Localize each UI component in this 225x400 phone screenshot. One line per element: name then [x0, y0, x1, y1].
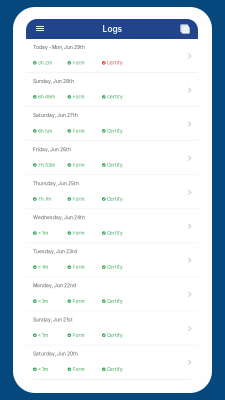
staticText: < 1m	[38, 332, 48, 338]
staticText: 7h 33m	[38, 162, 55, 168]
staticText: Form	[72, 94, 84, 100]
staticText: 6h 5m	[38, 128, 52, 134]
staticText: < 1m	[38, 264, 48, 270]
staticText: Certify	[107, 196, 123, 202]
staticText: Certify	[107, 332, 123, 338]
staticText: Tuesday, Jun 23rd	[33, 248, 77, 254]
staticText: < 1m	[38, 298, 48, 304]
staticText: Form	[72, 366, 84, 372]
staticText: Saturday, Jun 20th	[33, 351, 78, 357]
button[interactable]: New log	[176, 19, 194, 39]
staticText: Form	[72, 332, 84, 338]
button[interactable]: Saturday, Jun 20th	[26, 345, 198, 379]
staticText: 7h 7m	[38, 196, 51, 202]
button[interactable]: Sunday, Jun 28th	[26, 73, 198, 107]
staticText: Sunday, Jun 21st	[33, 317, 73, 323]
staticText: Certify	[107, 298, 123, 304]
staticText: Certify	[107, 230, 123, 236]
staticText: Certify	[107, 94, 123, 100]
button[interactable]: Friday, Jun 26th	[26, 141, 198, 175]
staticText: Form	[72, 162, 84, 168]
button[interactable]: Menu	[31, 19, 49, 39]
staticText: 3h 2m	[38, 60, 52, 66]
staticText: Form	[72, 128, 84, 134]
button[interactable]: Today - Mon, Jun 29th	[26, 39, 198, 73]
staticText: Form	[72, 298, 84, 304]
button[interactable]: Saturday, Jun 27th	[26, 107, 198, 141]
staticText: Certify	[107, 128, 123, 134]
staticText: Wednesday, Jun 24th	[33, 214, 85, 220]
staticText: 6h 49m	[38, 94, 55, 100]
staticText: Certify	[107, 366, 123, 372]
staticText: Certify	[107, 60, 123, 66]
staticText: Logs	[102, 24, 122, 34]
staticText: Thursday, Jun 25th	[33, 180, 79, 186]
button[interactable]: Thursday, Jun 25th	[26, 175, 198, 209]
staticText: Form	[72, 60, 84, 66]
staticText: Form	[72, 196, 84, 202]
staticText: Certify	[107, 162, 123, 168]
button[interactable]: Tuesday, Jun 23rd	[26, 243, 198, 277]
staticText: < 1m	[38, 230, 48, 236]
button[interactable]: Monday, Jun 22nd	[26, 277, 198, 311]
staticText: Sunday, Jun 28th	[33, 78, 74, 84]
staticText: < 1m	[38, 366, 48, 372]
staticText: Monday, Jun 22nd	[33, 283, 76, 289]
staticText: Today - Mon, Jun 29th	[33, 44, 85, 50]
staticText: Certify	[107, 264, 123, 270]
button[interactable]: Wednesday, Jun 24th	[26, 209, 198, 243]
staticText: Saturday, Jun 27th	[33, 112, 78, 118]
staticText: Form	[72, 264, 84, 270]
staticText: Friday, Jun 26th	[33, 146, 71, 152]
button[interactable]: Sunday, Jun 21st	[26, 311, 198, 345]
staticText: Form	[72, 230, 84, 236]
